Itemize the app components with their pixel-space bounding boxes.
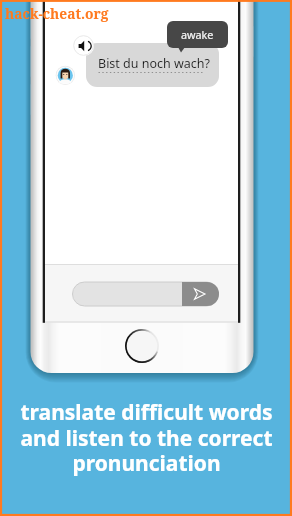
button[interactable]: Play pronunciation	[74, 36, 94, 56]
staticText: translate difficult words and listen to …	[20, 398, 273, 477]
button[interactable]: awake	[167, 21, 228, 48]
button[interactable]: Message input	[73, 282, 219, 306]
button[interactable]: Send	[182, 282, 219, 306]
staticText: awake	[181, 27, 214, 42]
button[interactable]: Bist du noch wach?	[86, 43, 219, 87]
staticText: hack-cheat.org	[5, 4, 109, 23]
staticText: Bist du noch wach?	[98, 55, 211, 72]
